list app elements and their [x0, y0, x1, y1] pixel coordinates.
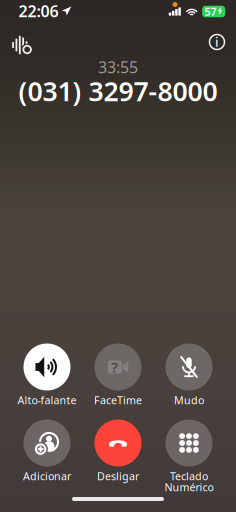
button[interactable]: Alto-falante [8, 343, 86, 405]
staticText: Adicionar [23, 469, 71, 483]
staticText: Teclado [170, 469, 208, 483]
staticText: i [215, 33, 219, 50]
button[interactable]: ? [79, 343, 157, 405]
staticText: 33:55 [98, 56, 138, 78]
button[interactable]: Call info [204, 29, 230, 55]
staticText: ? [111, 357, 118, 377]
button[interactable]: Audio [11, 34, 32, 55]
staticText: FaceTime [94, 393, 142, 407]
staticText: 22:06 [18, 0, 58, 22]
staticText: Desligar [97, 469, 139, 483]
button[interactable]: Adicionar [8, 419, 86, 481]
staticText: Numérico [164, 480, 213, 494]
button[interactable]: Teclado [150, 419, 228, 492]
staticText: (031) 3297-8000 [18, 73, 217, 109]
staticText: Mudo [174, 393, 204, 407]
button[interactable]: Mudo [150, 343, 228, 405]
staticText: Alto-falante [17, 393, 76, 407]
button[interactable]: Desligar [79, 419, 157, 481]
staticText: 57 [204, 4, 216, 19]
